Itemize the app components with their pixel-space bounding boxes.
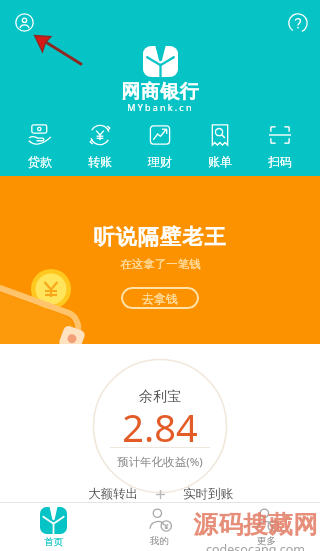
staticText: 理财 (148, 154, 172, 169)
staticText: 贷款 (28, 154, 52, 169)
button[interactable]: 理财 (140, 123, 180, 169)
staticText: 余利宝 (139, 388, 181, 406)
staticText: 扫码 (268, 154, 292, 169)
staticText: 2.84 (122, 401, 198, 453)
button[interactable]: 首页 (0, 503, 106, 551)
button[interactable]: 转账 (80, 123, 120, 169)
staticText: codesocang.com (206, 541, 305, 551)
staticText: 源码搜藏网 (193, 509, 318, 540)
staticText: 网商银行 (121, 80, 199, 104)
button[interactable]: 贷款 (20, 123, 60, 169)
button[interactable]: 去拿钱 (121, 287, 199, 309)
staticText: 去拿钱 (142, 291, 178, 306)
button[interactable]: 扫码 (260, 123, 300, 169)
button[interactable]: 更多 (213, 503, 320, 551)
staticText: 更多 (257, 535, 276, 547)
button[interactable]: 我的 (106, 503, 213, 551)
staticText: MYbank.cn (127, 101, 194, 113)
staticText: 账单 (208, 154, 232, 169)
button[interactable]: Help (286, 11, 309, 34)
staticText: 预计年化收益(%) (117, 454, 203, 470)
button[interactable]: 账单 (200, 123, 240, 169)
staticText: 我的 (150, 535, 169, 547)
staticText: 听说隔壁老王 (93, 224, 227, 250)
button[interactable]: Account (13, 11, 35, 33)
button[interactable]: 大额转出 (88, 486, 138, 502)
staticText: 首页 (44, 536, 63, 548)
staticText: 在这拿了一笔钱 (120, 257, 201, 271)
button[interactable]: 实时到账 (183, 486, 233, 502)
staticText: 转账 (88, 154, 112, 169)
